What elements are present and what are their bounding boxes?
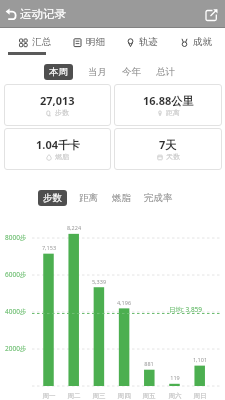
button[interactable] xyxy=(4,6,20,22)
staticText: 完成率 xyxy=(144,192,173,204)
staticText: 明细 xyxy=(86,36,105,48)
staticText: 周四 xyxy=(112,392,136,400)
staticText: 天数 xyxy=(166,152,180,161)
button[interactable]: 本周 xyxy=(44,64,73,80)
button[interactable]: 总计 xyxy=(156,66,175,78)
staticText: 运动记录 xyxy=(20,7,90,21)
button[interactable]: 汇总 xyxy=(19,35,53,49)
button[interactable]: 27,013 xyxy=(4,84,111,126)
button[interactable]: 成就 xyxy=(180,35,214,49)
staticText: 周二 xyxy=(62,392,86,400)
staticText: 步数 xyxy=(55,108,69,117)
staticText: 2000步 xyxy=(5,344,33,353)
staticText: 1.04千卡 xyxy=(36,137,80,152)
button[interactable]: 1.04千卡 xyxy=(4,128,111,170)
button[interactable]: 明细 xyxy=(73,35,107,49)
button[interactable]: 当月 xyxy=(88,66,107,78)
staticText: 燃脂 xyxy=(112,192,131,204)
button[interactable]: 步数 xyxy=(38,190,67,206)
button[interactable]: 燃脂 xyxy=(112,192,131,204)
staticText: 27,013 xyxy=(40,93,75,108)
staticText: 今年 xyxy=(122,66,141,78)
staticText: 7,153 xyxy=(35,244,63,251)
staticText: 119 xyxy=(161,374,189,381)
staticText: 成就 xyxy=(193,36,212,48)
staticText: 16.88公里 xyxy=(143,93,194,108)
staticText: 8,224 xyxy=(60,224,88,231)
button[interactable] xyxy=(204,8,218,22)
button[interactable]: 7天 xyxy=(114,128,222,170)
staticText: 距离 xyxy=(166,108,180,117)
button[interactable]: 轨迹 xyxy=(126,35,160,49)
staticText: 总计 xyxy=(156,66,175,78)
staticText: 周一 xyxy=(37,392,61,400)
staticText: 燃脂 xyxy=(55,152,69,161)
button[interactable]: 完成率 xyxy=(144,192,173,204)
button[interactable]: 16.88公里 xyxy=(114,84,222,126)
staticText: 881 xyxy=(135,360,163,367)
button[interactable]: 距离 xyxy=(79,192,98,204)
staticText: 8000步 xyxy=(5,233,33,242)
staticText: 4,196 xyxy=(110,299,138,306)
staticText: 步数 xyxy=(43,192,62,204)
staticText: 6000步 xyxy=(5,270,33,279)
staticText: 汇总 xyxy=(32,36,51,48)
staticText: 周五 xyxy=(137,392,161,400)
button[interactable]: 今年 xyxy=(122,66,141,78)
staticText: 4000步 xyxy=(5,307,33,316)
staticText: 周六 xyxy=(163,392,187,400)
staticText: 轨迹 xyxy=(139,36,158,48)
staticText: 当月 xyxy=(88,66,107,78)
staticText: 日均: 3,859 xyxy=(169,305,214,314)
staticText: 7天 xyxy=(159,137,177,152)
staticText: 本周 xyxy=(49,66,68,78)
staticText: 周日 xyxy=(188,392,212,400)
staticText: 周三 xyxy=(87,392,111,400)
staticText: 距离 xyxy=(79,192,98,204)
staticText: 5,339 xyxy=(85,278,113,285)
staticText: 1,101 xyxy=(186,356,214,363)
